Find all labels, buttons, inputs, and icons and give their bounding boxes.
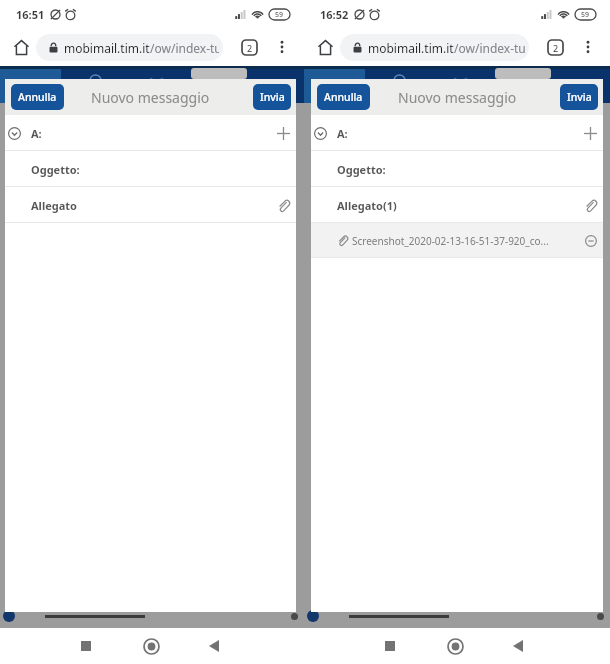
staticText: /ow/index-tu — [150, 40, 219, 56]
button[interactable]: Invia — [253, 84, 291, 110]
staticText: 59 — [275, 10, 284, 20]
button[interactable]: Allegato — [5, 187, 296, 223]
staticText: mobimail.tim.it — [64, 40, 150, 56]
button[interactable]: Recents — [70, 630, 102, 662]
staticText: 2 — [247, 42, 253, 54]
button[interactable]: A: — [311, 115, 603, 151]
staticText: Invia — [567, 90, 592, 104]
button[interactable]: Home — [7, 33, 35, 61]
button[interactable]: Invia — [560, 84, 598, 110]
button[interactable]: Allegato(1) — [311, 187, 603, 223]
staticText: 2 — [553, 42, 559, 54]
button[interactable]: Annulla — [11, 84, 64, 110]
button[interactable]: More options — [270, 35, 294, 59]
staticText: Allegato — [31, 198, 77, 213]
staticText: Screenshot_2020-02-13-16-51-37-920_co... — [352, 234, 549, 248]
button[interactable]: More options — [576, 35, 600, 59]
staticText: Oggetto: — [31, 162, 80, 177]
staticText: Nuovo messaggio — [91, 88, 210, 107]
staticText: A: — [31, 126, 42, 141]
button[interactable]: Tabs — [236, 34, 262, 60]
button[interactable]: mobimail.tim.it — [340, 34, 529, 61]
staticText: Allegato(1) — [337, 198, 397, 213]
button[interactable]: Home — [311, 33, 339, 61]
button[interactable]: Oggetto: — [311, 151, 603, 187]
staticText: Annulla — [324, 90, 363, 104]
staticText: 59 — [581, 10, 590, 20]
button[interactable]: Oggetto: — [5, 151, 296, 187]
staticText: Invia — [260, 90, 285, 104]
staticText: Annulla — [18, 90, 57, 104]
staticText: mobimail.tim.it — [368, 40, 454, 56]
button[interactable]: mobimail.tim.it — [36, 34, 223, 61]
staticText: Oggetto: — [337, 162, 386, 177]
staticText: A: — [337, 126, 348, 141]
button[interactable]: Tabs — [542, 34, 568, 60]
button[interactable]: Screenshot_2020-02-13-16-51-37-920_co... — [311, 223, 603, 258]
button[interactable]: Back — [198, 630, 230, 662]
button[interactable]: Recents — [374, 630, 406, 662]
button[interactable]: Back — [502, 630, 534, 662]
staticText: Nuovo messaggio — [398, 88, 517, 107]
staticText: 16:51 — [16, 7, 45, 22]
staticText: 16:52 — [320, 7, 349, 22]
button[interactable]: Home — [439, 630, 471, 662]
staticText: /ow/index-tu — [454, 40, 525, 56]
button[interactable]: Home — [135, 630, 167, 662]
button[interactable]: Annulla — [317, 84, 370, 110]
button[interactable]: A: — [5, 115, 296, 151]
